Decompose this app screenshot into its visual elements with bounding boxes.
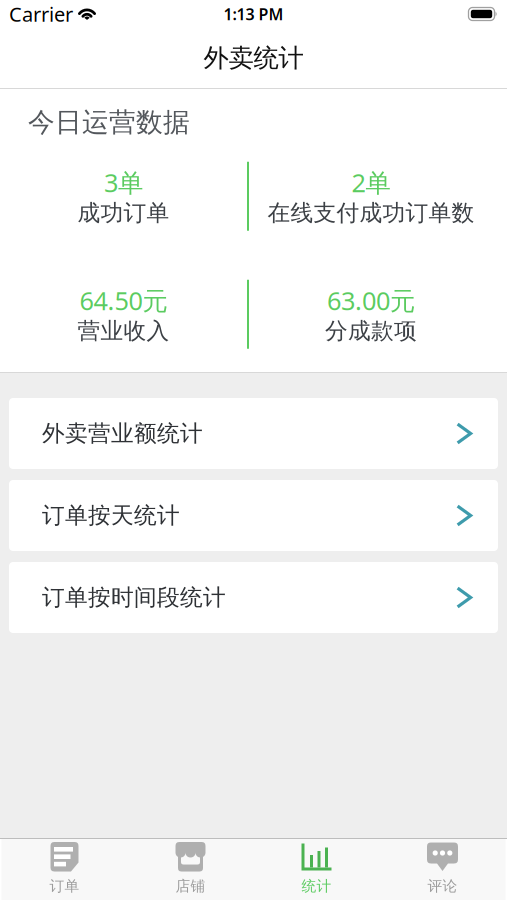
staticText: 3单 xyxy=(104,165,143,199)
staticText: 订单按天统计 xyxy=(42,502,180,529)
staticText: 评论 xyxy=(427,877,457,895)
staticText: 63.00元 xyxy=(327,283,415,317)
button[interactable]: 外卖营业额统计 xyxy=(9,398,498,469)
staticText: 店铺 xyxy=(175,877,205,895)
staticText: Carrier xyxy=(9,1,73,27)
staticText: 2单 xyxy=(351,165,390,199)
staticText: 统计 xyxy=(301,877,331,895)
staticText: 分成款项 xyxy=(325,317,417,345)
button[interactable]: 订单按时间段统计 xyxy=(9,562,498,633)
staticText: 订单 xyxy=(49,877,79,895)
staticText: 外卖营业额统计 xyxy=(42,420,203,447)
button[interactable]: 评论 xyxy=(379,839,505,900)
staticText: 订单按时间段统计 xyxy=(42,584,226,611)
staticText: 1:13 PM xyxy=(223,3,283,25)
button[interactable]: 店铺 xyxy=(127,839,253,900)
button[interactable]: 统计 xyxy=(253,839,379,900)
staticText: 在线支付成功订单数 xyxy=(267,199,474,227)
staticText: 64.50元 xyxy=(79,283,167,317)
staticText: 今日运营数据 xyxy=(28,106,190,139)
staticText: 营业收入 xyxy=(77,317,169,345)
staticText: 外卖统计 xyxy=(203,42,303,73)
button[interactable]: 订单按天统计 xyxy=(9,480,498,551)
staticText: 成功订单 xyxy=(77,199,169,227)
button[interactable]: 订单 xyxy=(1,839,127,900)
